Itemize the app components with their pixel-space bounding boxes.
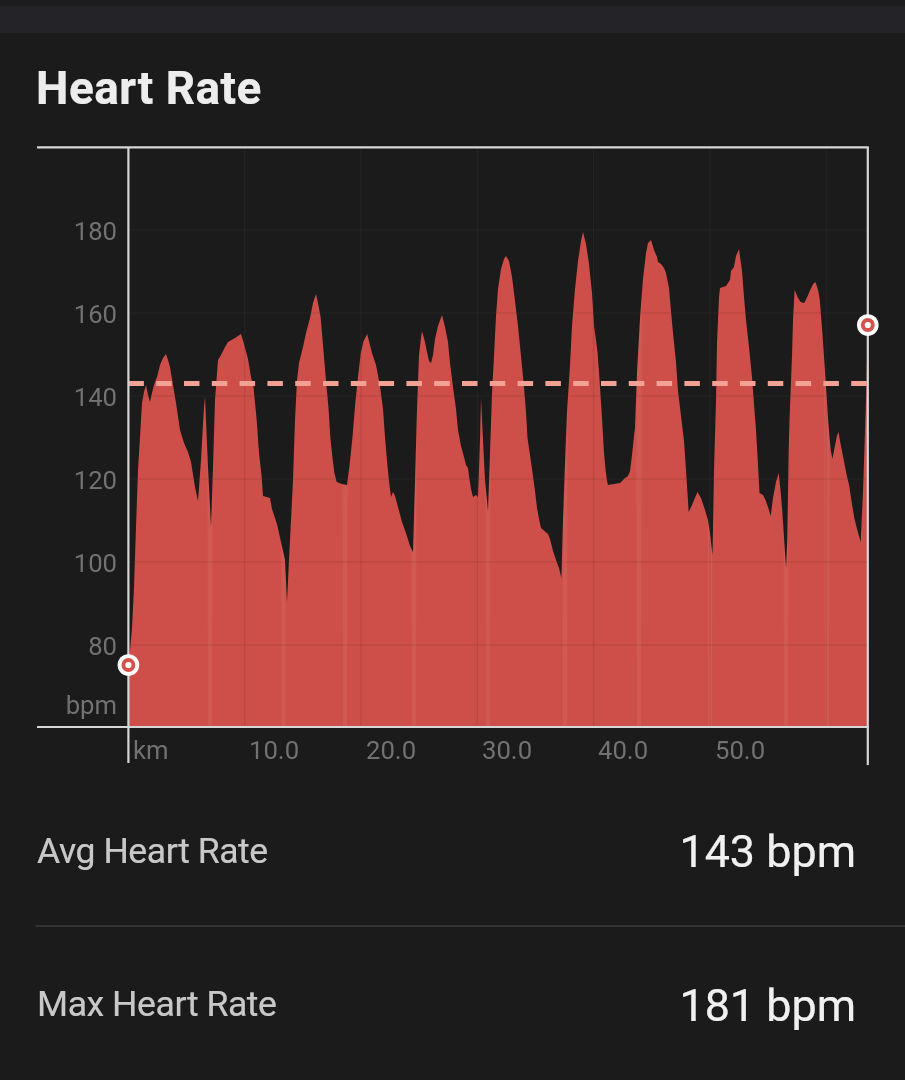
staticText: 120 <box>0 465 117 495</box>
staticText: 20.0 <box>366 735 417 765</box>
staticText: 143 bpm <box>0 825 856 878</box>
staticText: 40.0 <box>598 735 649 765</box>
staticText: 80 <box>0 631 117 661</box>
staticText: 160 <box>0 299 117 329</box>
staticText: 180 <box>0 216 117 246</box>
staticText: Avg Heart Rate <box>37 830 268 872</box>
staticText: 50.0 <box>715 735 766 765</box>
staticText: Heart Rate <box>36 62 262 116</box>
staticText: Max Heart Rate <box>37 983 277 1025</box>
staticText: km <box>133 735 169 765</box>
staticText: bpm <box>0 690 117 720</box>
button[interactable]: Avg Heart Rate <box>0 780 905 926</box>
staticText: 30.0 <box>482 735 533 765</box>
staticText: 10.0 <box>249 735 300 765</box>
staticText: 100 <box>0 548 117 578</box>
staticText: 181 bpm <box>0 979 856 1032</box>
staticText: 140 <box>0 382 117 412</box>
button[interactable]: Max Heart Rate <box>0 926 905 1080</box>
